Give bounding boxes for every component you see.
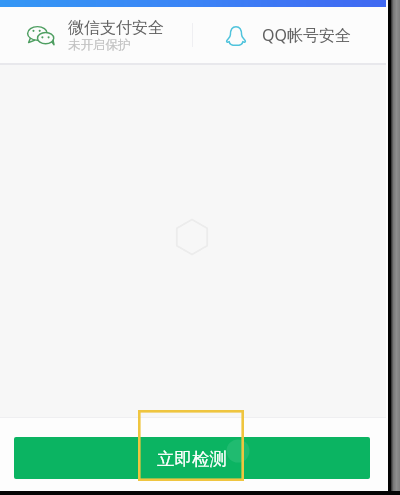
staticText: QQ帐号安全 bbox=[262, 24, 351, 46]
button[interactable]: QQ帐号安全 bbox=[193, 7, 386, 63]
staticText: 微信支付安全 bbox=[68, 18, 164, 38]
staticText: 未开启保护 bbox=[68, 37, 131, 53]
button[interactable]: 微信支付安全，未开启保护 bbox=[0, 7, 192, 63]
button[interactable]: 立即检测 bbox=[14, 437, 370, 479]
staticText: 立即检测 bbox=[157, 448, 227, 470]
